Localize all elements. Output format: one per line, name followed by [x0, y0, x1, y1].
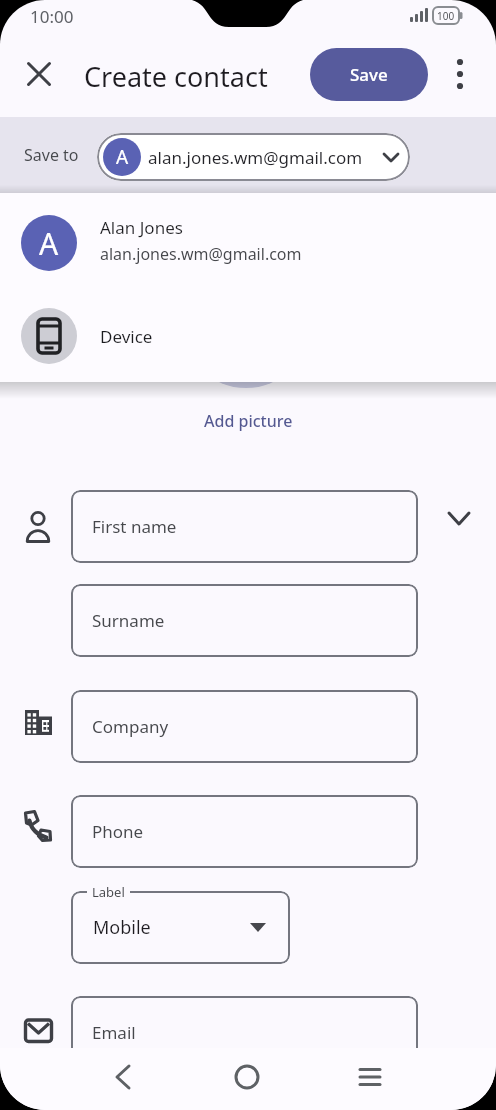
- button[interactable]: [0, 293, 496, 379]
- staticText: Surname: [92, 609, 165, 632]
- staticText: Save: [350, 63, 388, 86]
- staticText: Device: [100, 325, 153, 348]
- staticText: Add picture: [204, 410, 293, 432]
- button[interactable]: [346, 1053, 394, 1101]
- staticText: Phone: [92, 820, 144, 843]
- button[interactable]: Save: [310, 48, 428, 101]
- button[interactable]: [16, 52, 60, 96]
- staticText: A: [116, 144, 129, 170]
- button[interactable]: [0, 200, 496, 288]
- button[interactable]: Surname: [71, 584, 418, 657]
- staticText: alan.jones.wm@gmail.com: [148, 146, 363, 169]
- staticText: 10:00: [30, 5, 74, 27]
- staticText: alan.jones.wm@gmail.com: [100, 243, 302, 265]
- button[interactable]: [98, 1053, 146, 1101]
- button[interactable]: [440, 54, 480, 94]
- staticText: Alan Jones: [100, 216, 183, 239]
- staticText: Company: [92, 715, 169, 738]
- button[interactable]: Phone: [71, 795, 418, 868]
- staticText: A: [39, 223, 59, 264]
- button[interactable]: Add picture: [180, 405, 316, 437]
- button[interactable]: Company: [71, 690, 418, 763]
- staticText: Mobile: [93, 915, 151, 940]
- staticText: Create contact: [84, 58, 268, 92]
- staticText: First name: [92, 515, 177, 538]
- button[interactable]: [223, 1053, 271, 1101]
- button[interactable]: A: [97, 133, 410, 181]
- staticText: Label: [92, 883, 125, 901]
- staticText: Email: [92, 1021, 136, 1044]
- staticText: Save to: [24, 144, 79, 166]
- staticText: 100: [437, 9, 455, 23]
- button[interactable]: Mobile: [71, 891, 290, 964]
- button[interactable]: Email: [71, 996, 418, 1069]
- button[interactable]: First name: [71, 490, 418, 563]
